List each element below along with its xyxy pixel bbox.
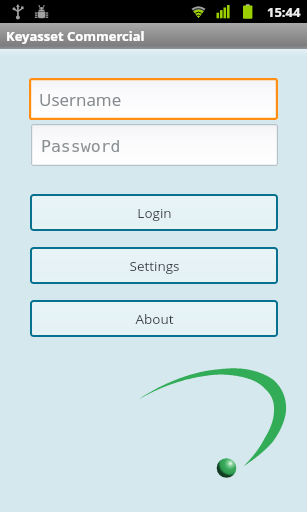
staticText: Login: [137, 204, 172, 222]
staticText: About: [135, 310, 174, 328]
staticText: Settings: [129, 257, 180, 275]
staticText: Password: [41, 137, 121, 156]
staticText: Keyasset Commercial: [6, 27, 145, 45]
button[interactable]: About: [30, 300, 278, 337]
button[interactable]: Settings: [30, 247, 278, 284]
button[interactable]: Login: [30, 194, 278, 231]
staticText: Username: [39, 88, 122, 111]
staticText: 15:44: [267, 3, 301, 21]
button[interactable]: Password: [31, 124, 278, 166]
button[interactable]: Username: [29, 78, 278, 120]
